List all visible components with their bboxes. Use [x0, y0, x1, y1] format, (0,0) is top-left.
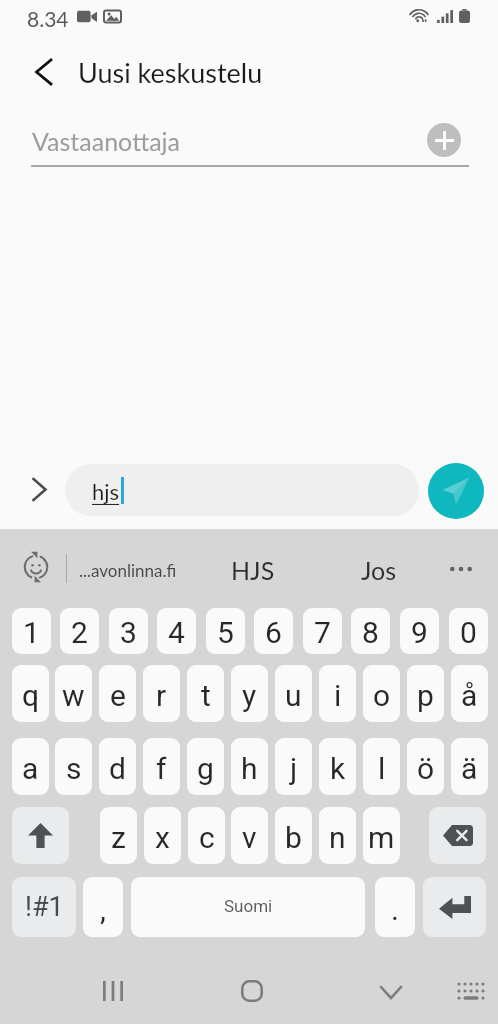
staticText: hjs — [92, 478, 120, 504]
button[interactable]: ä — [451, 738, 488, 795]
button[interactable]: 9 — [400, 608, 439, 654]
button[interactable]: Recents — [93, 971, 133, 1011]
button[interactable]: HJS — [231, 555, 275, 585]
button[interactable]: Switch keyboard — [451, 971, 491, 1011]
button[interactable]: g — [187, 738, 224, 795]
staticText: ö — [417, 751, 435, 786]
staticText: d — [109, 751, 126, 786]
button[interactable]: Add recipient — [427, 123, 461, 157]
staticText: r — [156, 678, 167, 713]
staticText: 3 — [120, 615, 137, 650]
staticText: 4 — [168, 615, 185, 650]
button[interactable]: s — [55, 738, 92, 795]
staticText: i — [334, 678, 342, 713]
button[interactable]: d — [99, 738, 136, 795]
button[interactable]: z — [100, 807, 137, 864]
button[interactable]: 4 — [157, 608, 196, 654]
button[interactable]: t — [187, 665, 224, 722]
button[interactable]: 6 — [254, 608, 293, 654]
staticText: 8.34 — [27, 6, 69, 31]
staticText: 7 — [314, 615, 331, 650]
button[interactable]: Hide keyboard — [371, 972, 411, 1012]
staticText: b — [285, 820, 302, 855]
button[interactable]: e — [99, 665, 136, 722]
staticText: v — [242, 820, 257, 855]
button[interactable]: 8 — [351, 608, 390, 654]
staticText: q — [22, 678, 40, 713]
staticText: . — [391, 892, 399, 927]
staticText: o — [373, 678, 391, 713]
button[interactable]: Jos — [361, 555, 397, 585]
button[interactable]: å — [451, 665, 488, 722]
button[interactable]: b — [275, 807, 312, 864]
staticText: y — [242, 678, 257, 713]
button[interactable]: , — [83, 877, 123, 937]
button[interactable]: j — [275, 738, 312, 795]
button[interactable]: y — [231, 665, 268, 722]
staticText: m — [368, 820, 395, 855]
staticText: c — [199, 820, 215, 855]
staticText: 5 — [217, 615, 234, 650]
button[interactable]: Back — [23, 48, 63, 96]
button[interactable]: p — [407, 665, 444, 722]
button[interactable]: !#1 — [12, 877, 76, 937]
button[interactable]: u — [275, 665, 312, 722]
button[interactable]: Home — [232, 971, 272, 1011]
button[interactable]: 2 — [60, 608, 99, 654]
staticText: z — [111, 820, 126, 855]
button[interactable]: q — [12, 665, 49, 722]
button[interactable]: x — [144, 807, 181, 864]
staticText: ä — [461, 751, 478, 786]
staticText: j — [290, 751, 298, 786]
button[interactable]: f — [143, 738, 180, 795]
staticText: 6 — [265, 615, 282, 650]
staticText: a — [22, 751, 39, 786]
button[interactable]: More options — [443, 551, 479, 587]
staticText: g — [197, 751, 214, 786]
staticText: 9 — [411, 615, 428, 650]
button[interactable]: n — [319, 807, 356, 864]
staticText: 8 — [362, 615, 379, 650]
staticText: t — [201, 678, 211, 713]
button[interactable]: i — [319, 665, 356, 722]
staticText: h — [241, 751, 258, 786]
button[interactable]: h — [231, 738, 268, 795]
button[interactable]: o — [363, 665, 400, 722]
staticText: Uusi keskustelu — [78, 56, 263, 88]
staticText: x — [155, 820, 170, 855]
staticText: k — [330, 751, 346, 786]
button[interactable]: c — [188, 807, 225, 864]
staticText: n — [329, 820, 346, 855]
button[interactable]: Shift — [12, 807, 69, 864]
button[interactable]: . — [375, 877, 415, 937]
staticText: 0 — [460, 615, 477, 650]
button[interactable]: Emoji — [17, 548, 55, 586]
button[interactable]: 0 — [449, 608, 488, 654]
staticText: Suomi — [224, 896, 273, 916]
button[interactable]: w — [55, 665, 92, 722]
button[interactable]: Suomi — [131, 877, 365, 937]
staticText: w — [62, 678, 85, 713]
button[interactable]: 1 — [12, 608, 51, 654]
button[interactable]: r — [143, 665, 180, 722]
button[interactable]: 3 — [109, 608, 148, 654]
button[interactable]: m — [363, 807, 400, 864]
button[interactable]: ...avonlinna.fi — [79, 560, 177, 580]
button[interactable]: ö — [407, 738, 444, 795]
button[interactable]: 7 — [303, 608, 342, 654]
staticText: u — [285, 678, 302, 713]
staticText: , — [100, 892, 106, 927]
button[interactable]: Show more — [19, 469, 59, 509]
staticText: p — [417, 678, 434, 713]
button[interactable]: Send — [428, 463, 484, 519]
button[interactable]: 5 — [206, 608, 245, 654]
button[interactable]: Enter — [423, 877, 486, 937]
staticText: å — [461, 678, 478, 713]
button[interactable]: v — [231, 807, 268, 864]
button[interactable]: k — [319, 738, 356, 795]
button[interactable]: l — [363, 738, 400, 795]
button[interactable]: Backspace — [429, 807, 486, 864]
button[interactable]: a — [12, 738, 49, 795]
staticText: e — [110, 678, 126, 713]
button[interactable]: hjs — [65, 464, 419, 516]
